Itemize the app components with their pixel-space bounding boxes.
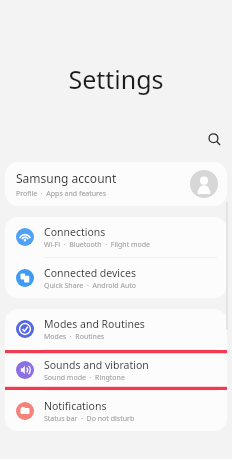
staticText: Modes and Routines <box>44 317 145 331</box>
staticText: Status bar · Do not disturb <box>44 414 135 424</box>
staticText: Quick Share · Android Auto <box>44 281 137 291</box>
staticText: Sounds and vibration <box>44 358 149 372</box>
staticText: Connected devices <box>44 266 137 280</box>
staticText: Modes · Routines <box>44 332 105 342</box>
button[interactable]: Modes and Routines <box>5 309 227 349</box>
staticText: Wi-Fi · Bluetooth · Flight mode <box>44 240 151 250</box>
button[interactable]: Sounds and vibration <box>5 350 227 390</box>
staticText: Notifications <box>44 399 107 413</box>
staticText: Profile · Apps and features <box>16 189 107 199</box>
button[interactable]: Connections <box>5 217 227 257</box>
staticText: Settings <box>0 62 232 96</box>
staticText: Sound mode · Ringtone <box>44 373 125 383</box>
button[interactable]: Search <box>202 127 226 151</box>
staticText: Connections <box>44 225 106 239</box>
button[interactable]: Samsung account <box>5 162 227 206</box>
button[interactable]: Notifications <box>5 391 227 431</box>
button[interactable]: Connected devices <box>5 258 227 298</box>
staticText: Samsung account <box>16 170 117 186</box>
